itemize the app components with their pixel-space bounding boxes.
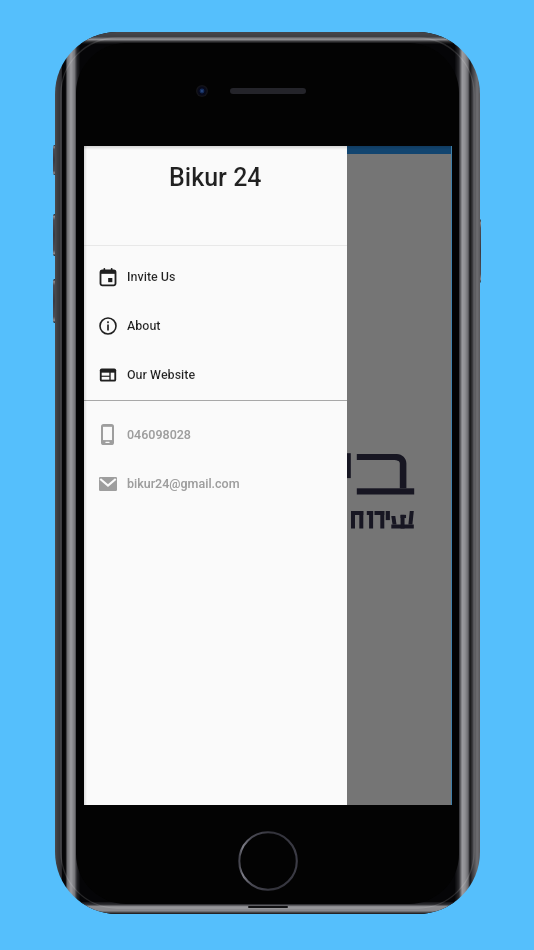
button[interactable]: Our Website bbox=[84, 350, 347, 399]
staticText: bikur24@gmail.com bbox=[127, 476, 240, 491]
button[interactable]: 046098028 bbox=[84, 410, 347, 459]
staticText: About bbox=[127, 318, 161, 333]
staticText: Our Website bbox=[127, 367, 196, 382]
button[interactable]: About bbox=[84, 301, 347, 350]
staticText: Invite Us bbox=[127, 269, 176, 284]
staticText: 046098028 bbox=[127, 427, 191, 442]
button[interactable]: bikur24@gmail.com bbox=[84, 459, 347, 508]
staticText: Bikur 24 bbox=[169, 163, 262, 192]
button[interactable]: Invite Us bbox=[84, 252, 347, 301]
